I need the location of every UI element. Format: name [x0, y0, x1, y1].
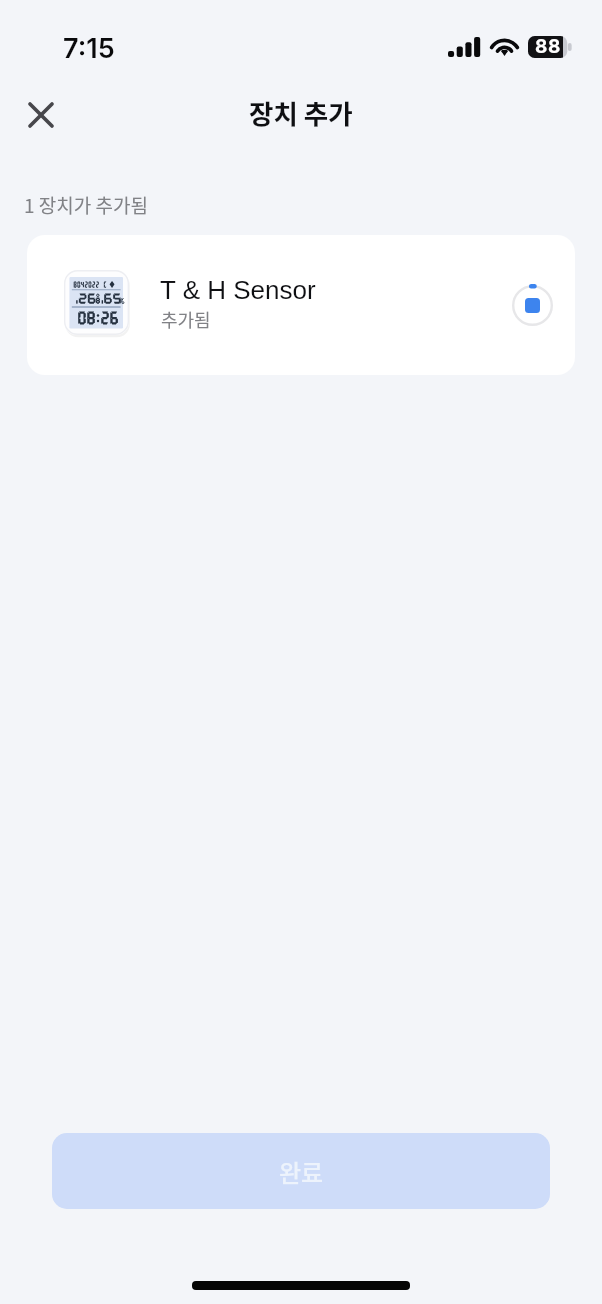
- button[interactable]: 완료: [52, 1133, 550, 1209]
- button[interactable]: Close: [15, 89, 67, 141]
- staticText: 장치 추가: [249, 93, 353, 131]
- staticText: 완료: [279, 1154, 324, 1189]
- staticText: 추가됨: [161, 306, 211, 332]
- staticText: 7:15: [63, 32, 115, 65]
- staticText: 1 장치가 추가됨: [24, 191, 148, 219]
- staticText: 88: [533, 35, 563, 58]
- button[interactable]: Stop adding device: [511, 284, 553, 326]
- staticText: T & H Sensor: [160, 275, 316, 304]
- button[interactable]: T & H Sensor: [27, 235, 575, 375]
